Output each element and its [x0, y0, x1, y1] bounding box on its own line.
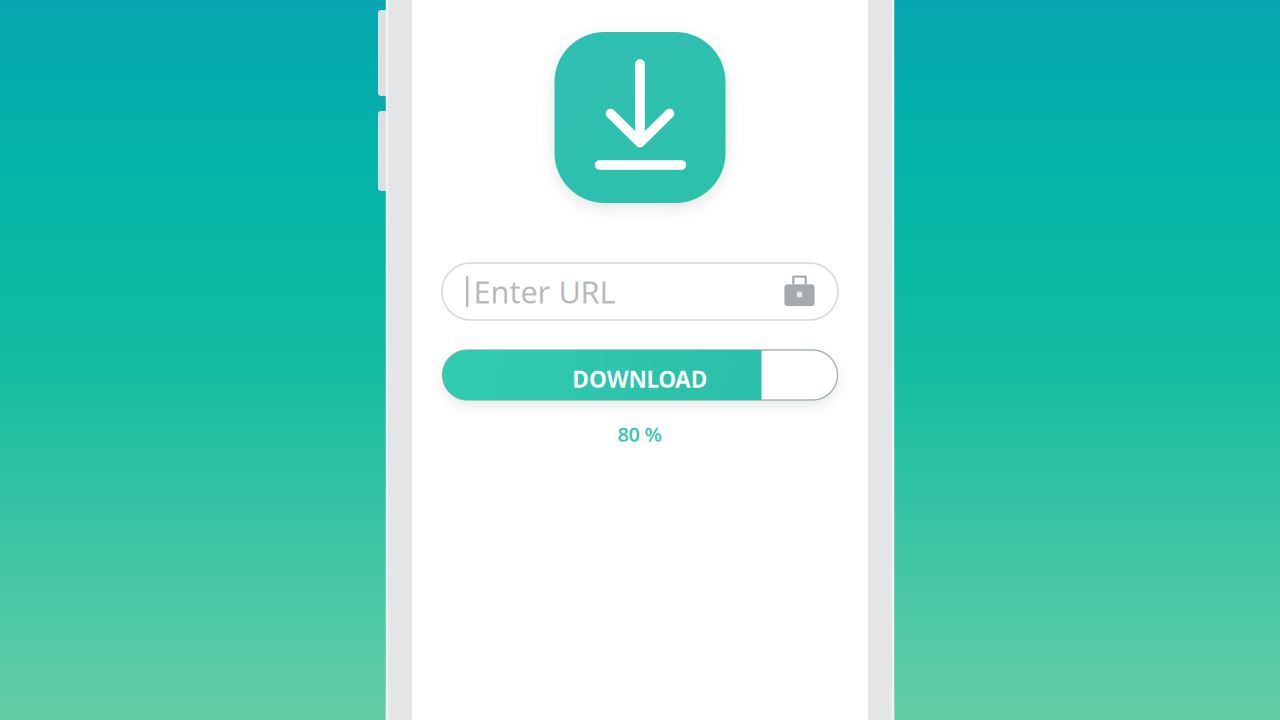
staticText: Enter URL	[473, 271, 615, 312]
staticText: 80 %	[617, 421, 662, 447]
button[interactable]: Enter URL	[442, 263, 838, 320]
button[interactable]: DOWNLOAD	[442, 350, 837, 400]
button[interactable]: Paste from clipboard	[777, 268, 821, 312]
staticText: DOWNLOAD	[572, 364, 708, 394]
